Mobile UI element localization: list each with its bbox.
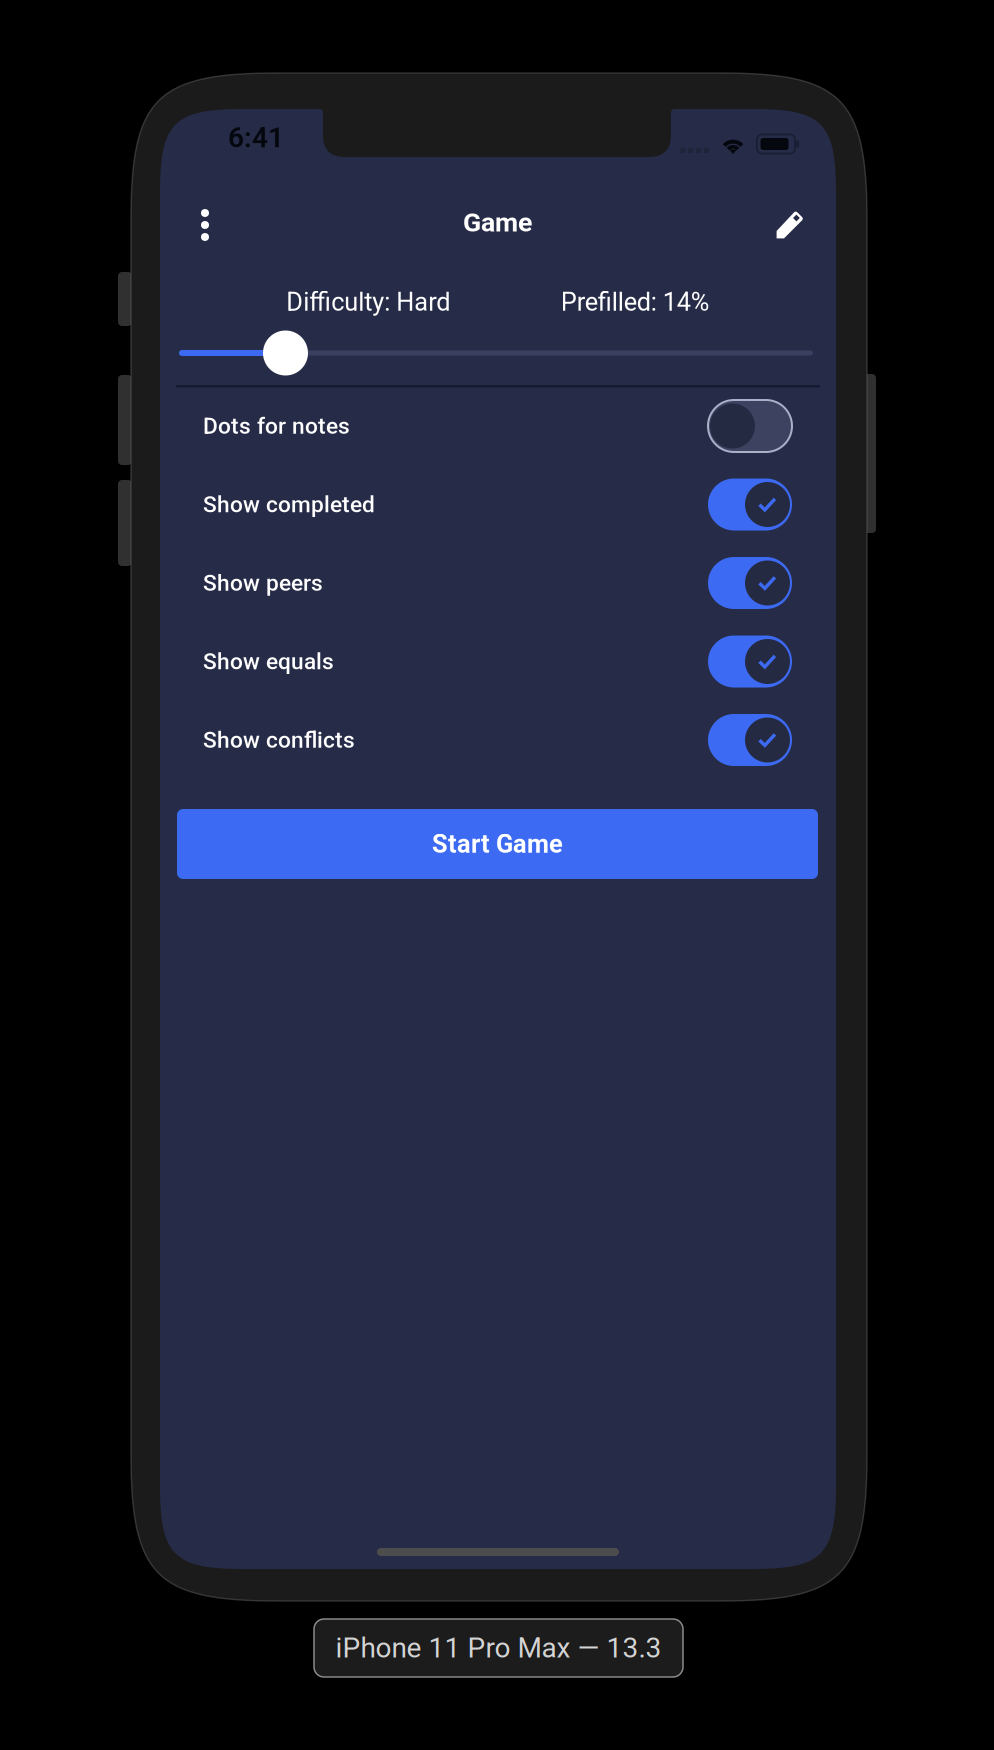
- staticText: iPhone 11 Pro Max — 13.3: [335, 1632, 661, 1664]
- button[interactable]: More options: [174, 194, 236, 256]
- staticText: Show conflicts: [203, 727, 355, 753]
- staticText: Show peers: [203, 570, 323, 596]
- staticText: Show equals: [203, 648, 334, 675]
- button[interactable]: Edit: [759, 194, 821, 256]
- staticText: Start Game: [432, 829, 563, 859]
- staticText: Dots for notes: [203, 413, 350, 439]
- button[interactable]: Dots for notes: [160, 387, 836, 465]
- button[interactable]: Start Game: [177, 809, 818, 879]
- button[interactable]: Show completed: [160, 465, 836, 544]
- staticText: Game: [463, 207, 532, 238]
- staticText: Show completed: [203, 491, 375, 518]
- button[interactable]: Show equals: [160, 622, 836, 701]
- button[interactable]: Show peers: [160, 544, 836, 622]
- button[interactable]: Show conflicts: [160, 701, 836, 779]
- staticText: Prefilled: 14%: [561, 287, 710, 317]
- staticText: Difficulty: Hard: [286, 287, 450, 317]
- staticText: 6:41: [228, 121, 284, 154]
